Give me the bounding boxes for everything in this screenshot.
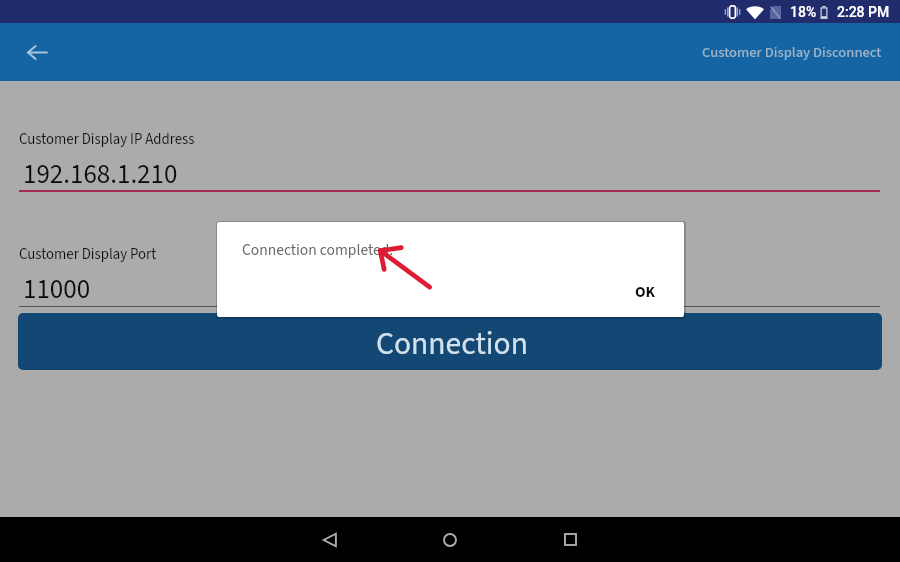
button[interactable]: Recent apps xyxy=(510,517,630,562)
staticText: Connection xyxy=(376,322,528,367)
button[interactable]: Home xyxy=(390,517,510,562)
staticText: Connection completed. xyxy=(242,239,394,261)
staticText: Customer Display Port xyxy=(19,244,157,265)
button[interactable]: Customer Display IP Address xyxy=(19,122,880,192)
button[interactable]: Navigate up xyxy=(13,28,61,76)
staticText: OK xyxy=(635,281,656,303)
staticText: Customer Display Disconnect xyxy=(702,42,882,63)
button[interactable]: Back xyxy=(270,517,390,562)
staticText: 11000 xyxy=(23,270,91,308)
button[interactable]: Customer Display Port xyxy=(19,237,880,307)
button[interactable]: OK xyxy=(627,275,664,309)
button[interactable]: Customer Display Disconnect xyxy=(690,32,894,73)
staticText: Customer Display IP Address xyxy=(19,129,195,150)
staticText: 192.168.1.210 xyxy=(23,155,178,193)
button[interactable]: Connection xyxy=(18,313,882,370)
staticText: 18% xyxy=(790,4,817,20)
staticText: 2:28 PM xyxy=(837,4,890,20)
